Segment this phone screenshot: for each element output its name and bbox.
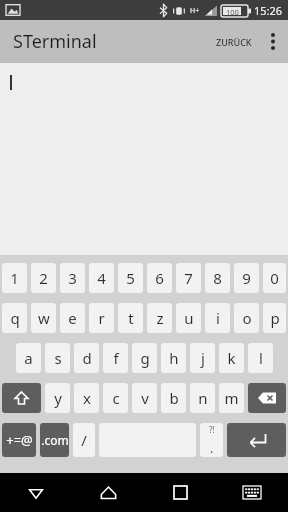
staticText: o [242,308,252,328]
button[interactable]: Back [0,473,72,512]
button[interactable]: Home [72,473,144,512]
button[interactable]: / [73,423,95,457]
button[interactable]: e [60,303,85,333]
button[interactable]: +=@ [2,423,36,457]
staticText: q [10,308,20,328]
button[interactable]: Backspace [248,383,286,413]
button[interactable]: x [74,383,99,413]
staticText: g [140,348,150,368]
staticText: 5 [126,268,135,288]
staticText: m [224,388,239,408]
button[interactable]: u [176,303,201,333]
staticText: H+ [190,6,200,16]
button[interactable]: t [118,303,143,333]
staticText: t [128,308,134,328]
staticText: l [259,348,263,368]
staticText: 0 [270,268,279,288]
staticText: z [156,308,164,328]
button[interactable]: l [248,343,273,373]
button[interactable]: k [219,343,244,373]
button[interactable]: Switch keyboard [216,473,288,512]
button[interactable]: ?! [200,423,223,457]
button[interactable]: 3 [60,263,85,293]
staticText: e [68,308,77,328]
staticText: d [82,348,92,368]
staticText: 100 [226,7,239,15]
button[interactable]: 4 [89,263,114,293]
staticText: j [201,348,205,368]
button[interactable] [0,63,288,255]
button[interactable]: n [190,383,215,413]
button[interactable]: i [205,303,230,333]
button[interactable]: v [132,383,157,413]
button[interactable]: d [74,343,99,373]
button[interactable]: ZURÜCK [210,28,258,56]
staticText: n [198,388,208,408]
staticText: k [227,348,236,368]
staticText: b [169,388,179,408]
staticText: v [141,388,149,408]
button[interactable]: b [161,383,186,413]
button[interactable]: p [263,303,286,333]
button[interactable]: More options [258,20,288,63]
button[interactable]: Shift [2,383,41,413]
staticText: s [54,348,62,368]
staticText: 8 [213,268,222,288]
button[interactable]: f [103,343,128,373]
staticText: f [113,348,119,368]
staticText: c [112,388,120,408]
staticText: h [169,348,179,368]
button[interactable]: w [31,303,56,333]
button[interactable]: 1 [2,263,27,293]
staticText: 7 [184,268,193,288]
button[interactable]: 5 [118,263,143,293]
staticText: 15:26 [254,3,283,18]
button[interactable]: g [132,343,157,373]
button[interactable]: o [234,303,259,333]
staticText: 3 [68,268,77,288]
button[interactable]: c [103,383,128,413]
staticText: .com [41,432,69,448]
staticText: u [184,308,194,328]
staticText: ZURÜCK [216,36,252,48]
button[interactable]: m [219,383,244,413]
staticText: STerminal [13,29,97,54]
button[interactable]: .com [40,423,69,457]
staticText: +=@ [6,431,33,449]
button[interactable]: j [190,343,215,373]
button[interactable]: 9 [234,263,259,293]
staticText: a [24,348,33,368]
staticText: w [38,308,50,328]
staticText: y [54,388,62,408]
button[interactable]: Recent apps [144,473,216,512]
button[interactable]: 6 [147,263,172,293]
button[interactable]: z [147,303,172,333]
button[interactable]: s [45,343,70,373]
staticText: 1 [10,268,19,288]
staticText: r [98,308,105,328]
staticText: 2 [39,268,48,288]
staticText: / [81,430,87,450]
button[interactable]: q [2,303,27,333]
staticText: i [216,308,220,328]
staticText: . [210,439,214,457]
button[interactable]: 0 [263,263,286,293]
staticText: ?! [209,424,215,435]
staticText: p [270,308,280,328]
staticText: 9 [242,268,251,288]
button[interactable]: r [89,303,114,333]
button[interactable]: 7 [176,263,201,293]
staticText: 6 [155,268,164,288]
button[interactable]: h [161,343,186,373]
button[interactable]: Enter [227,423,286,457]
button[interactable]: a [16,343,41,373]
button[interactable]: 8 [205,263,230,293]
staticText: 4 [97,268,106,288]
staticText: x [83,388,91,408]
button[interactable]: 2 [31,263,56,293]
button[interactable]: y [45,383,70,413]
